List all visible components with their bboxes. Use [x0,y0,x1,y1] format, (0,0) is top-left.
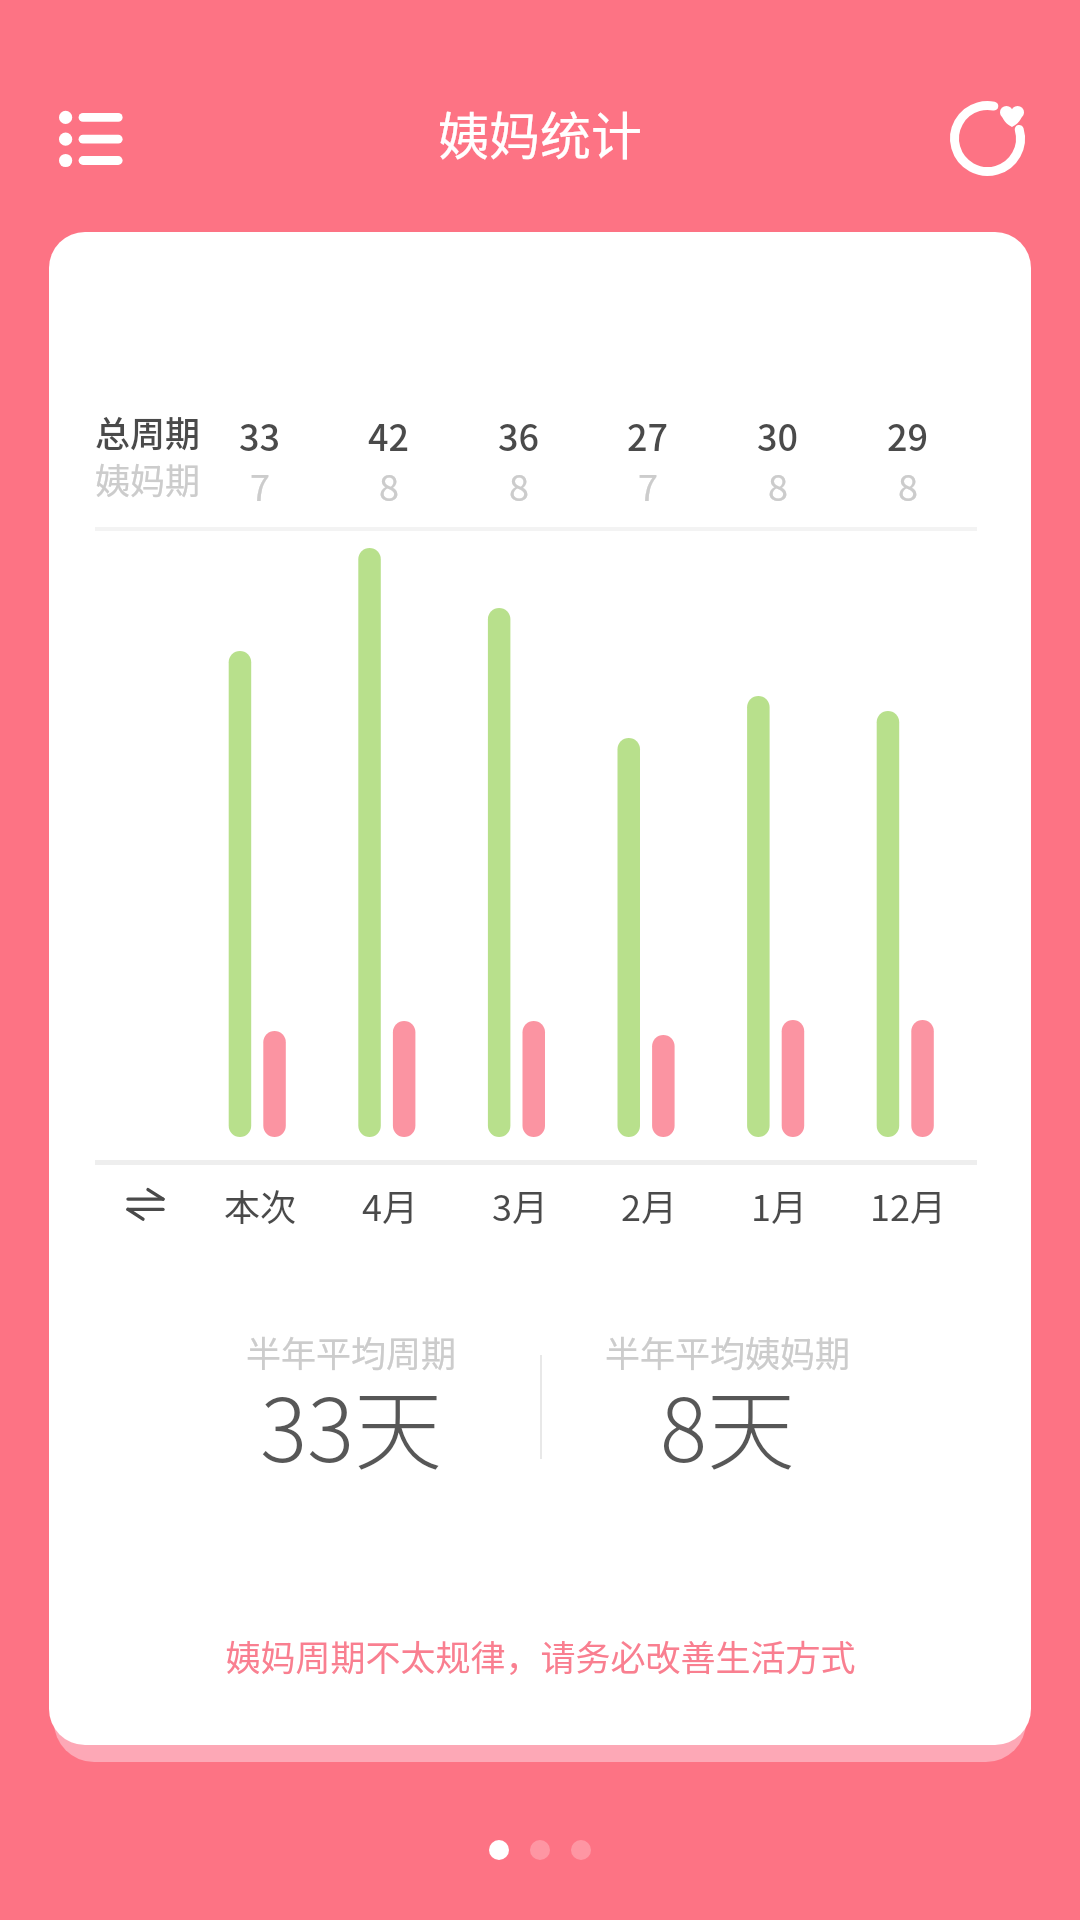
button[interactable]: Cycle tracker [940,90,1040,190]
button[interactable]: 3月 [456,1179,584,1235]
button[interactable]: Page 3 [571,1840,591,1860]
staticText: 7 [250,459,270,511]
staticText: 本次 [224,1179,297,1231]
staticText: 27 [627,409,669,461]
staticText: 2月 [621,1179,677,1231]
staticText: 8 [898,459,918,511]
staticText: 半年平均姨妈期 [605,1326,851,1377]
staticText: 12月 [870,1179,946,1231]
button[interactable]: 2月 [585,1179,713,1235]
staticText: 7 [638,459,658,511]
button[interactable]: Page 1 [489,1840,509,1860]
button[interactable]: Page 2 [530,1840,550,1860]
staticText: 总周期 [95,406,201,457]
staticText: 36 [498,409,540,461]
button[interactable]: 12月 [844,1179,972,1235]
button[interactable]: 4月 [326,1179,454,1235]
staticText: 半年平均周期 [246,1326,457,1377]
staticText: 3月 [492,1179,548,1231]
staticText: 姨妈统计 [438,96,643,170]
staticText: 8 [768,459,788,511]
staticText: 30 [757,409,799,461]
staticText: 8 [509,459,529,511]
staticText: 33 [239,409,281,461]
staticText: 1月 [751,1179,807,1231]
button[interactable]: Switch chart [118,1180,174,1230]
button[interactable]: 本次 [196,1179,324,1235]
staticText: 姨妈期 [95,453,201,504]
staticText: 8 [379,459,399,511]
staticText: 33天 [260,1360,443,1487]
button[interactable]: 1月 [715,1179,843,1235]
staticText: 29 [887,409,929,461]
button[interactable]: Menu [48,98,136,186]
staticText: 8天 [660,1360,796,1487]
staticText: 4月 [362,1179,418,1231]
staticText: 姨妈周期不太规律，请务必改善生活方式 [225,1630,856,1681]
staticText: 42 [368,409,410,461]
